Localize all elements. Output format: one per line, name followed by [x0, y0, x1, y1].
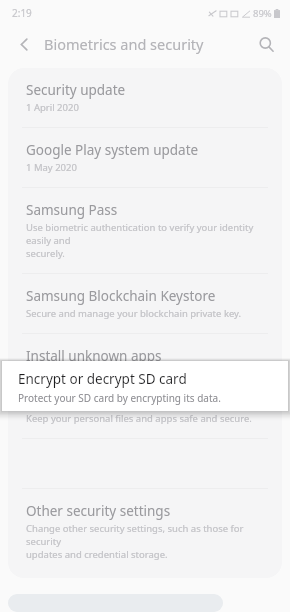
- staticText: Secure and manage your blockchain privat…: [26, 307, 242, 320]
- button[interactable]: Security update: [8, 68, 282, 127]
- button[interactable]: Samsung Pass: [8, 188, 282, 273]
- staticText: Install unknown apps: [26, 347, 162, 365]
- staticText: Other security settings: [26, 502, 171, 520]
- button[interactable]: Back: [8, 28, 40, 60]
- staticText: Use biometric authentication to verify y…: [26, 221, 268, 260]
- staticText: Change other security settings, such as …: [26, 522, 268, 561]
- staticText: Encrypt or decrypt SD card: [18, 370, 187, 388]
- button[interactable]: Install unknown apps: [8, 334, 282, 378]
- staticText: Samsung Blockchain Keystore: [26, 287, 216, 305]
- staticText: Keep your personal files and apps safe a…: [26, 412, 252, 425]
- staticText: 89%: [253, 7, 272, 20]
- staticText: Biometrics and security: [44, 34, 204, 54]
- staticText: Secure Folder: [26, 392, 113, 410]
- button[interactable]: Other security settings: [8, 489, 282, 574]
- staticText: 1 May 2020: [26, 161, 77, 174]
- button[interactable]: Secure Folder: [8, 379, 282, 438]
- staticText: Security update: [26, 81, 126, 99]
- staticText: Google Play system update: [26, 141, 199, 159]
- button[interactable]: Search: [250, 28, 282, 60]
- staticText: 2:19: [12, 6, 32, 20]
- staticText: 1 April 2020: [26, 101, 79, 114]
- staticText: Protect your SD card by encrypting its d…: [18, 391, 221, 405]
- button[interactable]: Encrypt or decrypt SD card: [2, 361, 288, 411]
- button[interactable]: Google Play system update: [8, 128, 282, 187]
- staticText: Samsung Pass: [26, 201, 118, 219]
- button[interactable]: Samsung Blockchain Keystore: [8, 274, 282, 333]
